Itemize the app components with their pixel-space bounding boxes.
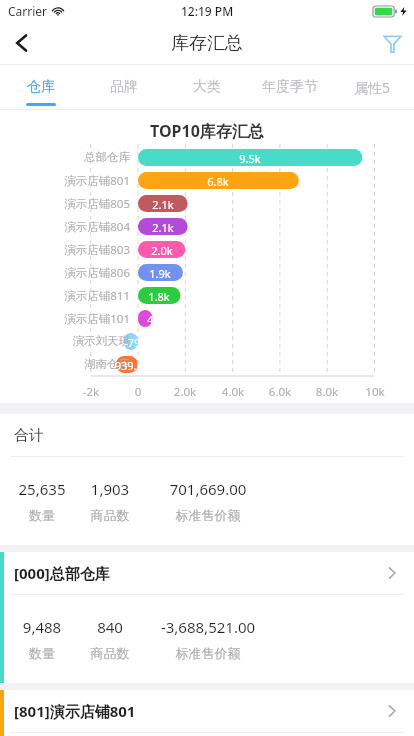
staticText: 商品数 bbox=[50, 645, 170, 661]
staticText: 演示店铺805 bbox=[0, 196, 130, 212]
staticText: 演示店铺811 bbox=[0, 288, 130, 304]
staticText: 9.5k bbox=[228, 151, 272, 166]
button[interactable]: Filter bbox=[370, 22, 414, 64]
button[interactable]: [801]演示店铺801 bbox=[0, 690, 414, 732]
staticText: 演示店铺806 bbox=[0, 265, 130, 281]
staticText: 属性5 bbox=[354, 78, 391, 97]
staticText: 数量 bbox=[0, 507, 102, 523]
staticText: 标准售价额 bbox=[148, 507, 268, 523]
button[interactable]: 属性5 bbox=[331, 64, 414, 110]
staticText: 6.8k bbox=[196, 174, 240, 189]
staticText: 439.0 bbox=[139, 312, 183, 327]
staticText: 演示刘天琪 bbox=[0, 334, 130, 348]
staticText: 840 bbox=[50, 617, 170, 637]
staticText: 标准售价额 bbox=[148, 645, 268, 661]
staticText: 商品数 bbox=[50, 507, 170, 523]
button[interactable]: 品牌 bbox=[82, 64, 165, 110]
staticText: 25,635 bbox=[0, 479, 102, 499]
staticText: -3,688,521.00 bbox=[148, 617, 268, 637]
staticText: [000]总部仓库 bbox=[14, 563, 110, 583]
staticText: 合计 bbox=[14, 426, 44, 445]
staticText: 年度季节 bbox=[262, 78, 318, 96]
staticText: 0 bbox=[118, 384, 158, 400]
staticText: 湖南仓库 bbox=[0, 357, 130, 371]
staticText: 8.0k bbox=[307, 384, 347, 400]
staticText: 大类 bbox=[193, 78, 221, 96]
staticText: TOP10库存汇总 bbox=[150, 120, 264, 142]
button[interactable]: Back bbox=[0, 22, 44, 64]
staticText: 1,903 bbox=[50, 479, 170, 499]
staticText: 2.0k bbox=[165, 384, 205, 400]
staticText: 2.1k bbox=[141, 197, 185, 212]
staticText: 2.0k bbox=[140, 243, 184, 258]
staticText: 数量 bbox=[0, 645, 102, 661]
staticText: 9,488 bbox=[0, 617, 102, 637]
button[interactable]: 仓库 bbox=[0, 64, 82, 110]
staticText: 仓库 bbox=[27, 78, 55, 96]
button[interactable]: 年度季节 bbox=[248, 64, 331, 110]
staticText: -939.0 bbox=[105, 358, 149, 373]
staticText: -2k bbox=[71, 384, 111, 400]
staticText: 12:19 PM bbox=[181, 3, 234, 19]
staticText: 4.0k bbox=[213, 384, 253, 400]
staticText: 演示店铺803 bbox=[0, 242, 130, 258]
staticText: 10k bbox=[355, 384, 395, 400]
staticText: 6.0k bbox=[260, 384, 300, 400]
staticText: 演示店铺101 bbox=[0, 311, 130, 327]
staticText: 701,669.00 bbox=[148, 479, 268, 499]
staticText: 2.1k bbox=[141, 220, 185, 235]
staticText: 品牌 bbox=[110, 78, 138, 96]
staticText: 演示店铺801 bbox=[0, 173, 130, 189]
staticText: 库存汇总 bbox=[171, 32, 243, 55]
button[interactable]: [000]总部仓库 bbox=[0, 552, 414, 594]
button[interactable]: 大类 bbox=[165, 64, 248, 110]
staticText: 1.9k bbox=[138, 266, 182, 281]
staticText: [801]演示店铺801 bbox=[14, 701, 136, 721]
staticText: 演示店铺804 bbox=[0, 219, 130, 235]
staticText: 1.8k bbox=[137, 289, 181, 304]
staticText: 总部仓库 bbox=[0, 150, 130, 164]
staticText: -79.0 bbox=[115, 335, 159, 350]
staticText: Carrier bbox=[8, 3, 48, 19]
